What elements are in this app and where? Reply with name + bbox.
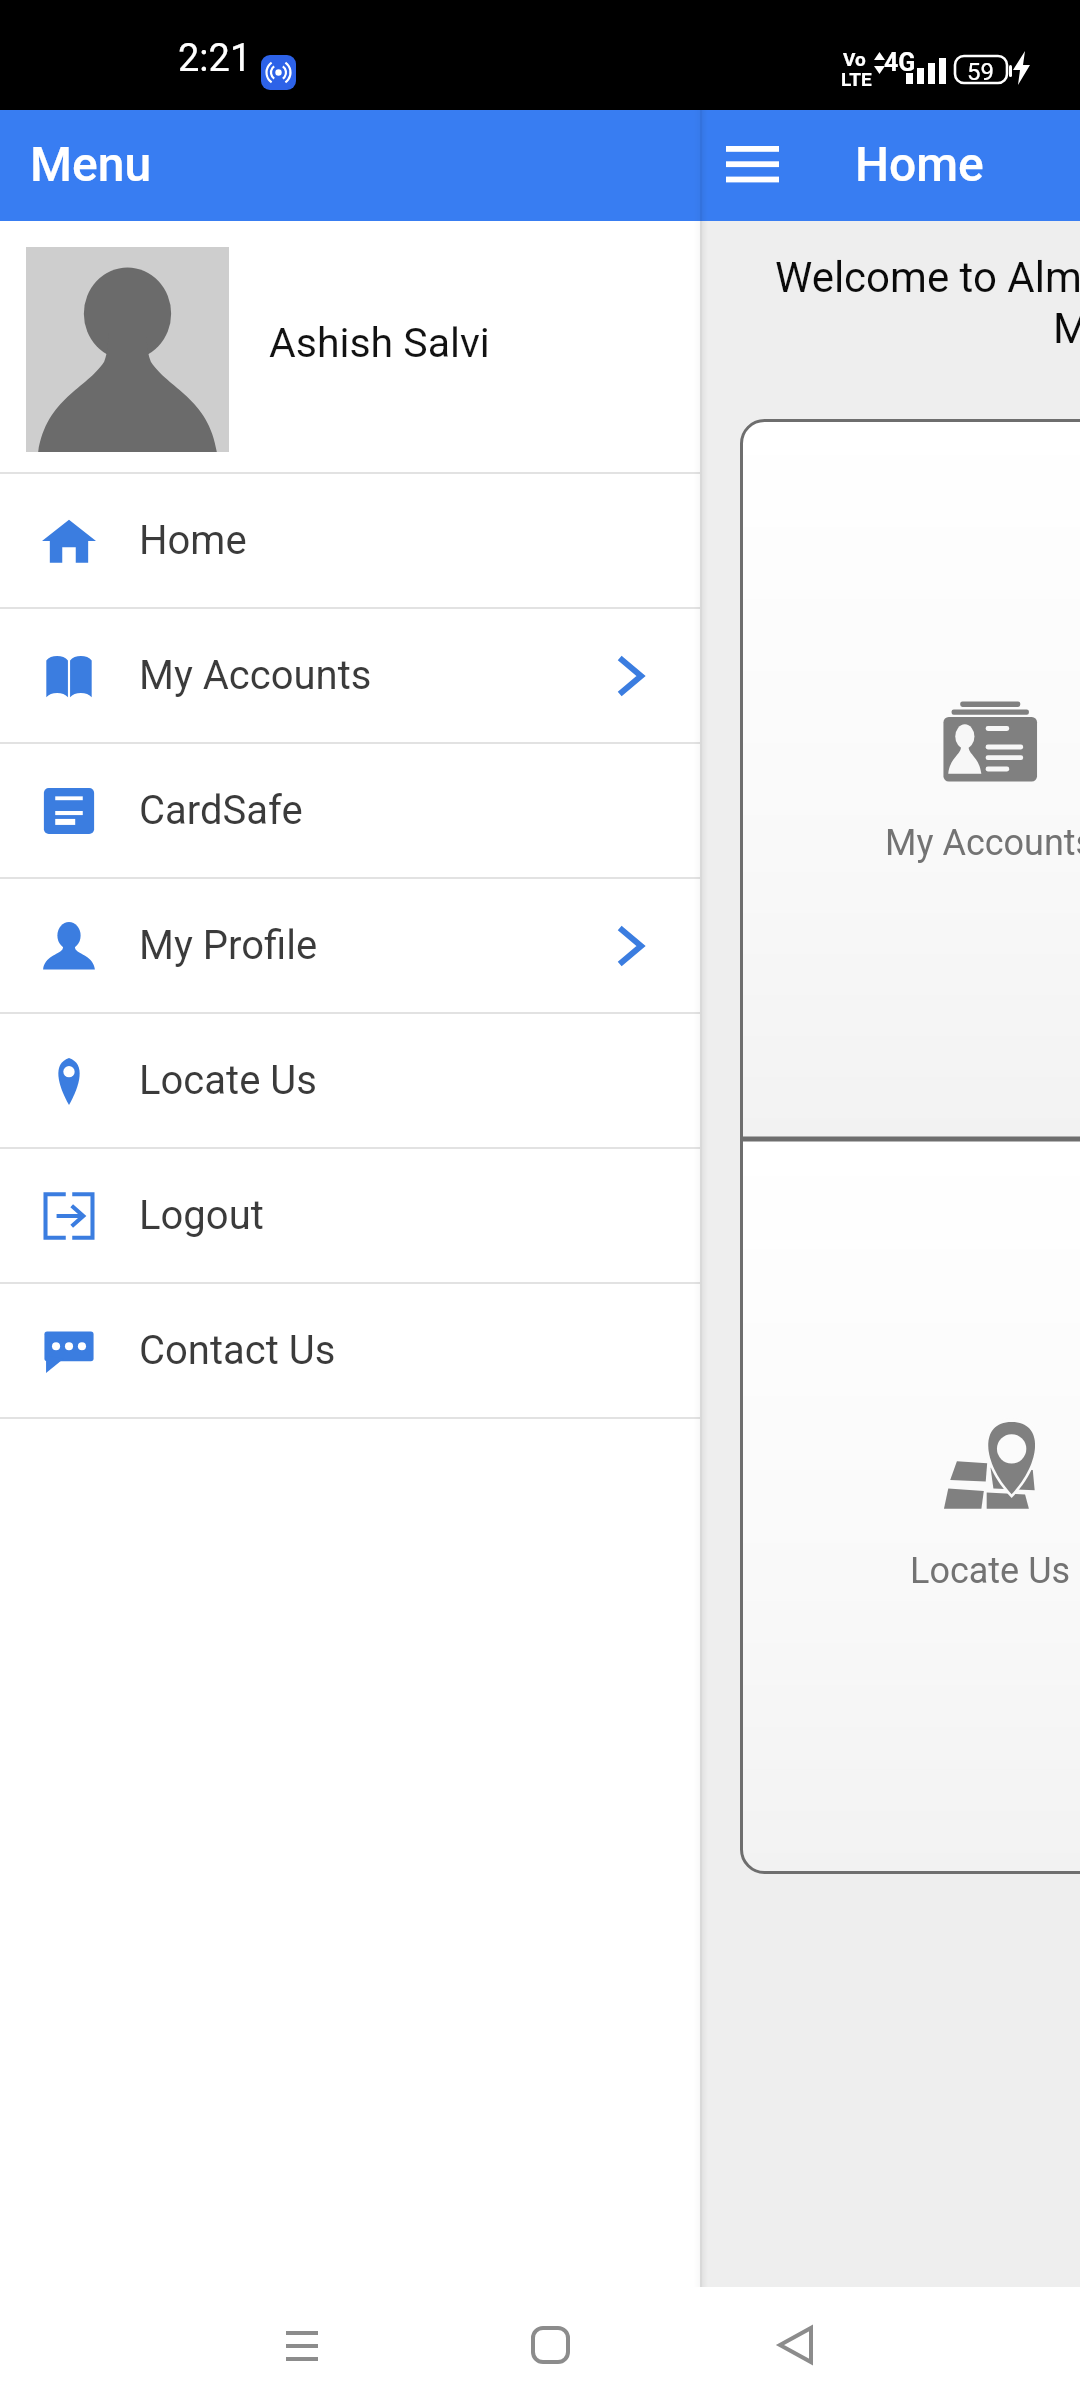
staticText: Vo (843, 48, 866, 70)
button[interactable]: CardSafe (0, 744, 700, 877)
staticText: Locate Us (139, 1057, 317, 1104)
staticText: Home (855, 136, 984, 192)
button[interactable]: My Accounts (740, 419, 1080, 1139)
staticText: My Profile (139, 922, 318, 969)
staticText: Ashish Salvi (269, 319, 490, 367)
staticText: Contact Us (139, 1327, 336, 1374)
staticText: CardSafe (139, 787, 303, 834)
staticText: 59 (967, 58, 994, 86)
button[interactable]: Logout (0, 1149, 700, 1282)
staticText: 4G (884, 48, 916, 77)
staticText: Mobile Banking (1053, 304, 1080, 353)
staticText: My Accounts (139, 652, 372, 699)
button[interactable]: Home (518, 2317, 582, 2381)
staticText: 2:21 (178, 36, 252, 81)
button[interactable]: Locate Us (0, 1014, 700, 1147)
button[interactable]: Back (764, 2317, 828, 2381)
button[interactable]: Open navigation menu (710, 118, 806, 214)
button[interactable]: My Profile (0, 879, 700, 1012)
staticText: Logout (139, 1192, 264, 1239)
staticText: Locate Us (910, 1550, 1071, 1592)
button[interactable]: My Accounts (0, 609, 700, 742)
button[interactable]: Home (0, 474, 700, 607)
staticText: LTE (841, 68, 872, 90)
staticText: Menu (30, 136, 152, 192)
staticText: Welcome to Almighty Nagari (775, 253, 1080, 302)
button[interactable]: Recents (270, 2317, 334, 2381)
staticText: My Accounts (885, 822, 1080, 864)
staticText: Home (139, 517, 247, 564)
button[interactable]: Locate Us (740, 1139, 1080, 1874)
button[interactable]: Contact Us (0, 1284, 700, 1417)
